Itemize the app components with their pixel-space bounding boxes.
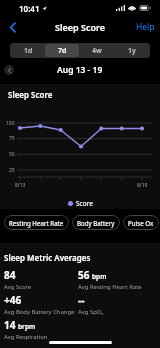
staticText: Sleep Score bbox=[55, 21, 106, 33]
button[interactable]: Help bbox=[129, 16, 160, 38]
staticText: brpm bbox=[18, 322, 36, 331]
staticText: -- bbox=[78, 293, 85, 307]
staticText: Avg Body Battery Change bbox=[4, 308, 75, 316]
staticText: 56 bbox=[78, 268, 90, 282]
button[interactable]: Resting Heart Rate bbox=[4, 215, 69, 230]
staticText: 1d bbox=[24, 46, 33, 56]
staticText: 10:41 bbox=[19, 3, 40, 14]
staticText: Resting Heart Rate bbox=[9, 219, 64, 227]
staticText: 75 bbox=[9, 135, 15, 142]
staticText: 25 bbox=[9, 167, 15, 174]
button[interactable]: Back bbox=[0, 15, 26, 39]
staticText: 1y bbox=[128, 46, 136, 56]
button[interactable]: Body Battery bbox=[72, 215, 120, 230]
staticText: Avg Score bbox=[4, 283, 32, 291]
staticText: 14 bbox=[4, 318, 16, 332]
staticText: +46 bbox=[4, 293, 22, 307]
button[interactable]: 1y bbox=[114, 44, 149, 57]
staticText: 100 bbox=[6, 120, 15, 127]
staticText: Help bbox=[136, 21, 155, 33]
staticText: 8/13 bbox=[15, 182, 26, 189]
staticText: Sleep Score bbox=[8, 89, 53, 100]
staticText: 50 bbox=[9, 151, 15, 158]
button[interactable]: Pulse Ox bbox=[123, 215, 159, 230]
staticText: 8/19 bbox=[137, 182, 148, 189]
staticText: Body Battery bbox=[77, 219, 115, 227]
button[interactable]: 7d bbox=[45, 44, 79, 57]
button[interactable]: Previous week bbox=[4, 65, 14, 75]
staticText: 84 bbox=[4, 268, 16, 282]
staticText: Avg SpO₂ bbox=[78, 308, 104, 316]
button[interactable]: 4w bbox=[79, 44, 114, 57]
staticText: bpm bbox=[92, 272, 107, 281]
staticText: 7d bbox=[58, 46, 67, 56]
staticText: Aug 13 - 19 bbox=[57, 64, 103, 76]
button[interactable]: 1d bbox=[11, 44, 45, 57]
staticText: Pulse Ox bbox=[128, 219, 154, 227]
staticText: 4w bbox=[92, 46, 102, 56]
staticText: Score bbox=[76, 199, 93, 208]
staticText: Sleep Metric Averages bbox=[4, 252, 91, 263]
staticText: Avg Respiration bbox=[4, 333, 48, 341]
staticText: Avg Resting Heart Rate bbox=[78, 283, 142, 291]
